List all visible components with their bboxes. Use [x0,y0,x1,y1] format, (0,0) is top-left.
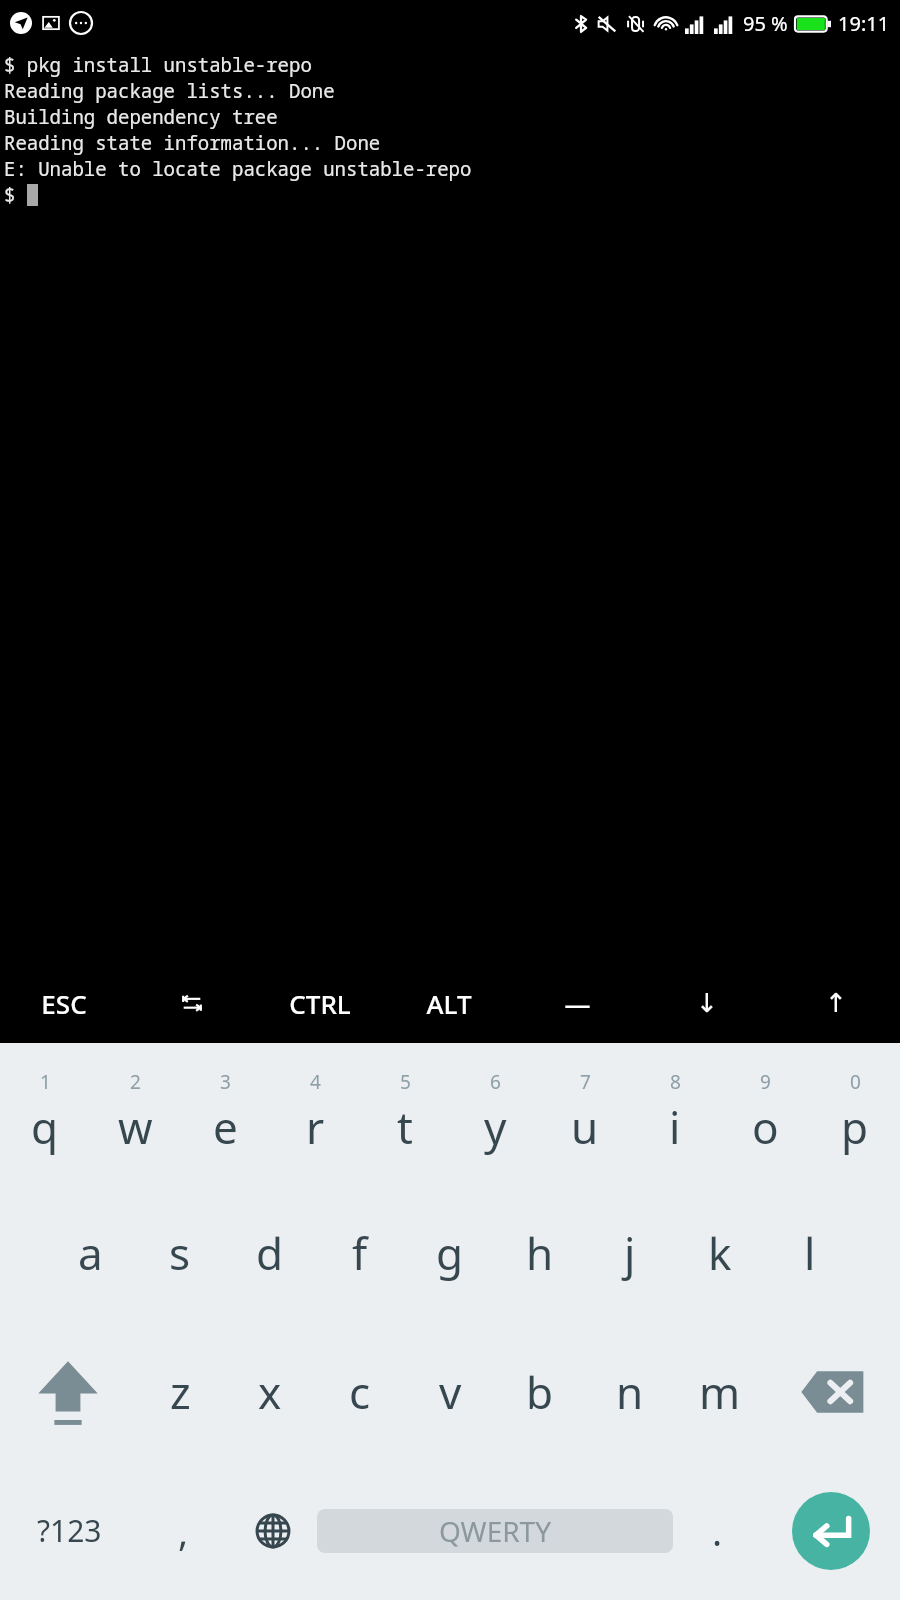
button[interactable]: 8 [630,1043,720,1183]
button[interactable]: 4 [270,1043,360,1183]
staticText: w [118,1097,153,1157]
staticText: m [699,1362,741,1422]
button[interactable]: f [315,1183,405,1322]
button[interactable]: $ pkg install unstable-repo [0,46,900,963]
staticText: , [178,1505,189,1557]
button[interactable]: g [405,1183,495,1322]
staticText: s [169,1223,191,1283]
staticText: p [841,1097,869,1157]
staticText: ESC [41,986,87,1021]
staticText: 9 [760,1069,771,1095]
staticText: 95 % [743,10,788,37]
button[interactable]: Enter [762,1461,900,1600]
staticText: 2 [130,1069,141,1095]
staticText: d [256,1223,284,1283]
staticText: . [712,1505,723,1557]
staticText: g [436,1223,464,1283]
staticText: 8 [670,1069,681,1095]
button[interactable]: c [315,1322,405,1461]
staticText: e [213,1097,238,1157]
button[interactable]: ESC [0,963,128,1043]
button[interactable]: d [225,1183,315,1322]
button[interactable]: 2 [90,1043,180,1183]
staticText: CTRL [289,986,351,1021]
button[interactable]: l [765,1183,855,1322]
button[interactable]: ↑ [771,963,900,1043]
staticText: i [669,1097,681,1157]
button[interactable]: Tab [128,963,256,1043]
button[interactable]: z [135,1322,225,1461]
button[interactable]: — [513,963,642,1043]
button[interactable]: 6 [450,1043,540,1183]
staticText: r [306,1097,325,1157]
staticText: n [616,1362,644,1422]
staticText: u [571,1097,599,1157]
staticText: 4 [310,1069,321,1095]
staticText: b [526,1362,554,1422]
staticText: j [624,1223,636,1283]
button[interactable]: CTRL [256,963,384,1043]
staticText: ?123 [37,1510,102,1551]
button[interactable]: 1 [0,1043,90,1183]
staticText: Reading state information... Done [4,130,381,156]
button[interactable]: h [495,1183,585,1322]
staticText: Building dependency tree [4,104,278,130]
button[interactable]: QWERTY [317,1461,673,1600]
button[interactable]: 7 [540,1043,630,1183]
button[interactable]: . [673,1461,762,1600]
button[interactable]: ?123 [0,1461,139,1600]
staticText: 1 [40,1069,51,1095]
staticText: 0 [850,1069,861,1095]
staticText: — [564,986,591,1021]
staticText: ↓ [696,988,718,1018]
staticText: ↑ [825,988,847,1018]
staticText: Reading package lists... Done [4,78,335,104]
staticText: 7 [580,1069,591,1095]
button[interactable]: m [675,1322,765,1461]
staticText: 5 [400,1069,411,1095]
button[interactable]: Shift [0,1322,135,1461]
button[interactable]: Change language [228,1461,317,1600]
button[interactable]: 5 [360,1043,450,1183]
button[interactable]: 9 [720,1043,810,1183]
button[interactable]: v [405,1322,495,1461]
button[interactable]: a [45,1183,135,1322]
button[interactable]: b [495,1322,585,1461]
staticText: l [804,1223,816,1283]
staticText: c [349,1362,371,1422]
staticText: h [526,1223,554,1283]
staticText: q [31,1097,59,1157]
staticText: $ [4,182,27,208]
staticText: $ pkg install unstable-repo [4,52,312,78]
button[interactable]: j [585,1183,675,1322]
button[interactable]: s [135,1183,225,1322]
staticText: E: Unable to locate package unstable-rep… [4,156,472,182]
button[interactable]: , [139,1461,228,1600]
staticText: 19:11 [838,10,890,37]
staticText: 6 [490,1069,501,1095]
staticText: 3 [220,1069,231,1095]
staticText: y [484,1097,507,1157]
button[interactable]: k [675,1183,765,1322]
staticText: f [352,1223,368,1283]
staticText: x [258,1362,282,1422]
staticText: QWERTY [439,1512,552,1550]
button[interactable]: Backspace [765,1322,900,1461]
staticText: t [397,1097,413,1157]
button[interactable]: ↓ [642,963,771,1043]
button[interactable]: n [585,1322,675,1461]
button[interactable]: ALT [384,963,513,1043]
staticText: a [78,1223,103,1283]
button[interactable]: 3 [180,1043,270,1183]
staticText: k [708,1223,732,1283]
button[interactable]: x [225,1322,315,1461]
button[interactable]: 0 [810,1043,900,1183]
staticText: z [170,1362,191,1422]
staticText: ALT [426,986,472,1021]
staticText: o [752,1097,779,1157]
staticText: v [439,1362,462,1422]
